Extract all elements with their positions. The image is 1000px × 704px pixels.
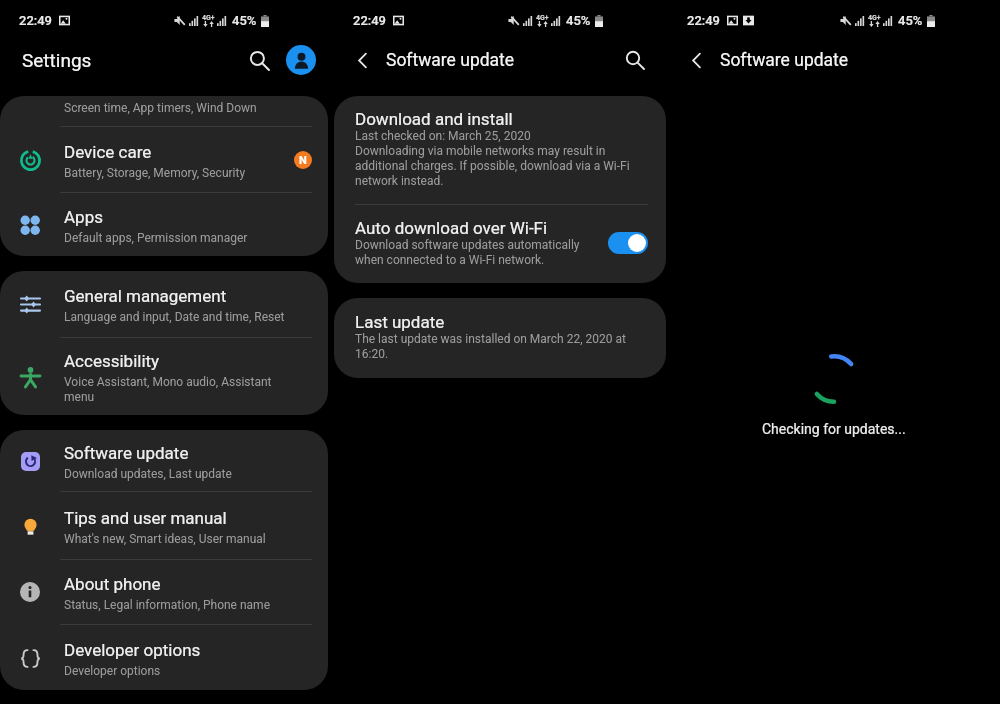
staticText: 22:49	[19, 13, 52, 28]
staticText: Download and install	[355, 109, 513, 129]
staticText: The last update was installed on March 2…	[355, 332, 626, 361]
staticText: Status, Legal information, Phone name	[64, 598, 270, 612]
staticText: Battery, Storage, Memory, Security	[64, 166, 246, 180]
staticText: Tips and user manual	[64, 508, 227, 528]
staticText: Last checked on: March 25, 2020 Download…	[355, 129, 630, 188]
staticText: Checking for updates...	[762, 421, 906, 437]
button[interactable]: Back	[672, 40, 720, 80]
staticText: 45%	[232, 13, 257, 28]
button[interactable]: General management	[0, 271, 328, 337]
button[interactable]: Accessibility	[0, 338, 328, 415]
staticText: Accessibility	[64, 351, 160, 371]
staticText: Download software updates automatically …	[355, 238, 580, 267]
staticText: Software update	[64, 443, 189, 463]
button[interactable]: About phone	[0, 560, 328, 624]
staticText: Developer options	[64, 640, 201, 660]
button[interactable]: Screen time, App timers, Wind Down	[0, 96, 328, 126]
button[interactable]: Software update	[0, 430, 328, 491]
button[interactable]: Account	[280, 40, 322, 80]
staticText: About phone	[64, 574, 161, 594]
staticText: 4G+	[202, 14, 215, 22]
staticText: What's new, Smart ideas, User manual	[64, 532, 266, 546]
staticText: Settings	[22, 49, 92, 71]
staticText: Voice Assistant, Mono audio, Assistant m…	[64, 375, 272, 404]
staticText: Developer options	[64, 664, 161, 678]
staticText: 45%	[566, 13, 591, 28]
button[interactable]: Download and install	[334, 96, 666, 204]
staticText: 45%	[898, 13, 923, 28]
staticText: Default apps, Permission manager	[64, 231, 248, 245]
staticText: 4G+	[536, 14, 549, 22]
staticText: Software update	[720, 50, 849, 71]
button[interactable]: Search	[238, 40, 280, 80]
button[interactable]: Auto download over Wi-Fi toggle	[608, 232, 648, 254]
button[interactable]: Search	[614, 40, 656, 80]
button[interactable]: Auto download over Wi-Fi	[334, 205, 666, 283]
staticText: General management	[64, 286, 227, 306]
button[interactable]: Last update	[334, 298, 666, 378]
staticText: Software update	[386, 50, 515, 71]
staticText: Apps	[64, 207, 103, 227]
staticText: 22:49	[353, 13, 386, 28]
button[interactable]: Apps	[0, 193, 328, 256]
button[interactable]: Tips and user manual	[0, 492, 328, 559]
staticText: Device care	[64, 142, 152, 162]
button[interactable]: Device care	[0, 127, 328, 192]
staticText: Download updates, Last update	[64, 467, 232, 481]
staticText: Language and input, Date and time, Reset	[64, 310, 285, 324]
staticText: N	[299, 154, 307, 167]
staticText: Auto download over Wi-Fi	[355, 218, 548, 238]
button[interactable]: Developer options	[0, 625, 328, 690]
staticText: 4G+	[868, 14, 881, 22]
button[interactable]: Back	[338, 40, 386, 80]
staticText: 22:49	[687, 13, 720, 28]
staticText: Last update	[355, 312, 445, 332]
staticText: Screen time, App timers, Wind Down	[64, 101, 257, 115]
